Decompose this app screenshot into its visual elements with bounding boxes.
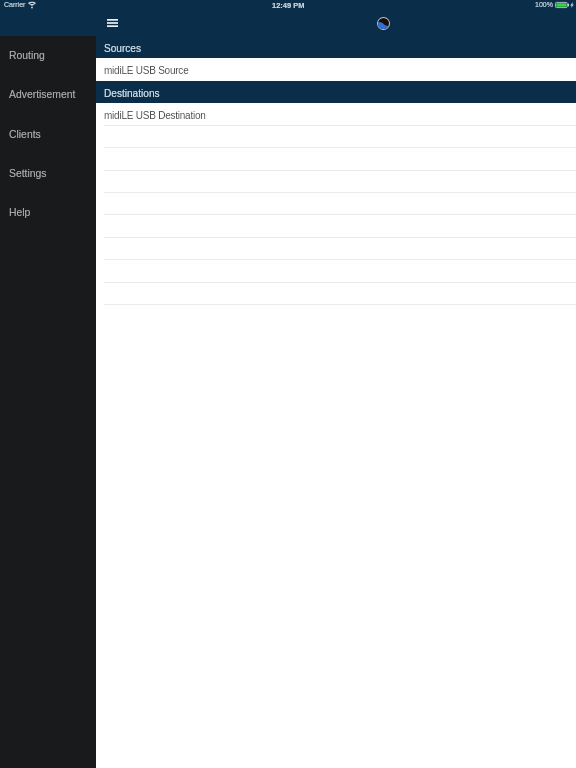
button[interactable] — [96, 193, 576, 215]
button[interactable]: Help — [0, 193, 96, 232]
staticText: Settings — [9, 168, 47, 180]
staticText: Sources — [104, 43, 142, 54]
button[interactable] — [96, 126, 576, 148]
button[interactable]: Destinations — [96, 81, 576, 103]
staticText: Routing — [9, 50, 45, 62]
staticText: midiLE USB Source — [104, 65, 189, 76]
staticText: Advertisement — [9, 89, 76, 101]
button[interactable] — [96, 238, 576, 260]
button[interactable]: Settings — [0, 154, 96, 193]
button[interactable] — [96, 171, 576, 193]
staticText: 100% — [535, 1, 553, 9]
staticText: 12:49 PM — [272, 1, 305, 9]
button[interactable]: Routing — [0, 36, 96, 75]
button[interactable] — [96, 260, 576, 283]
button[interactable] — [96, 283, 576, 305]
staticText: Help — [9, 207, 31, 219]
button[interactable]: midiLE USB Source — [96, 58, 576, 81]
staticText: Destinations — [104, 88, 160, 99]
staticText: Clients — [9, 129, 41, 141]
staticText: Carrier — [4, 1, 26, 9]
button[interactable] — [96, 148, 576, 171]
button[interactable]: App logo — [372, 12, 395, 35]
button[interactable]: midiLE USB Destination — [96, 103, 576, 126]
button[interactable]: Clients — [0, 115, 96, 154]
button[interactable]: Advertisement — [0, 75, 96, 115]
button[interactable]: Sources — [96, 36, 576, 58]
button[interactable] — [96, 215, 576, 238]
staticText: midiLE USB Destination — [104, 110, 206, 121]
button[interactable]: Open navigation menu — [99, 12, 125, 34]
